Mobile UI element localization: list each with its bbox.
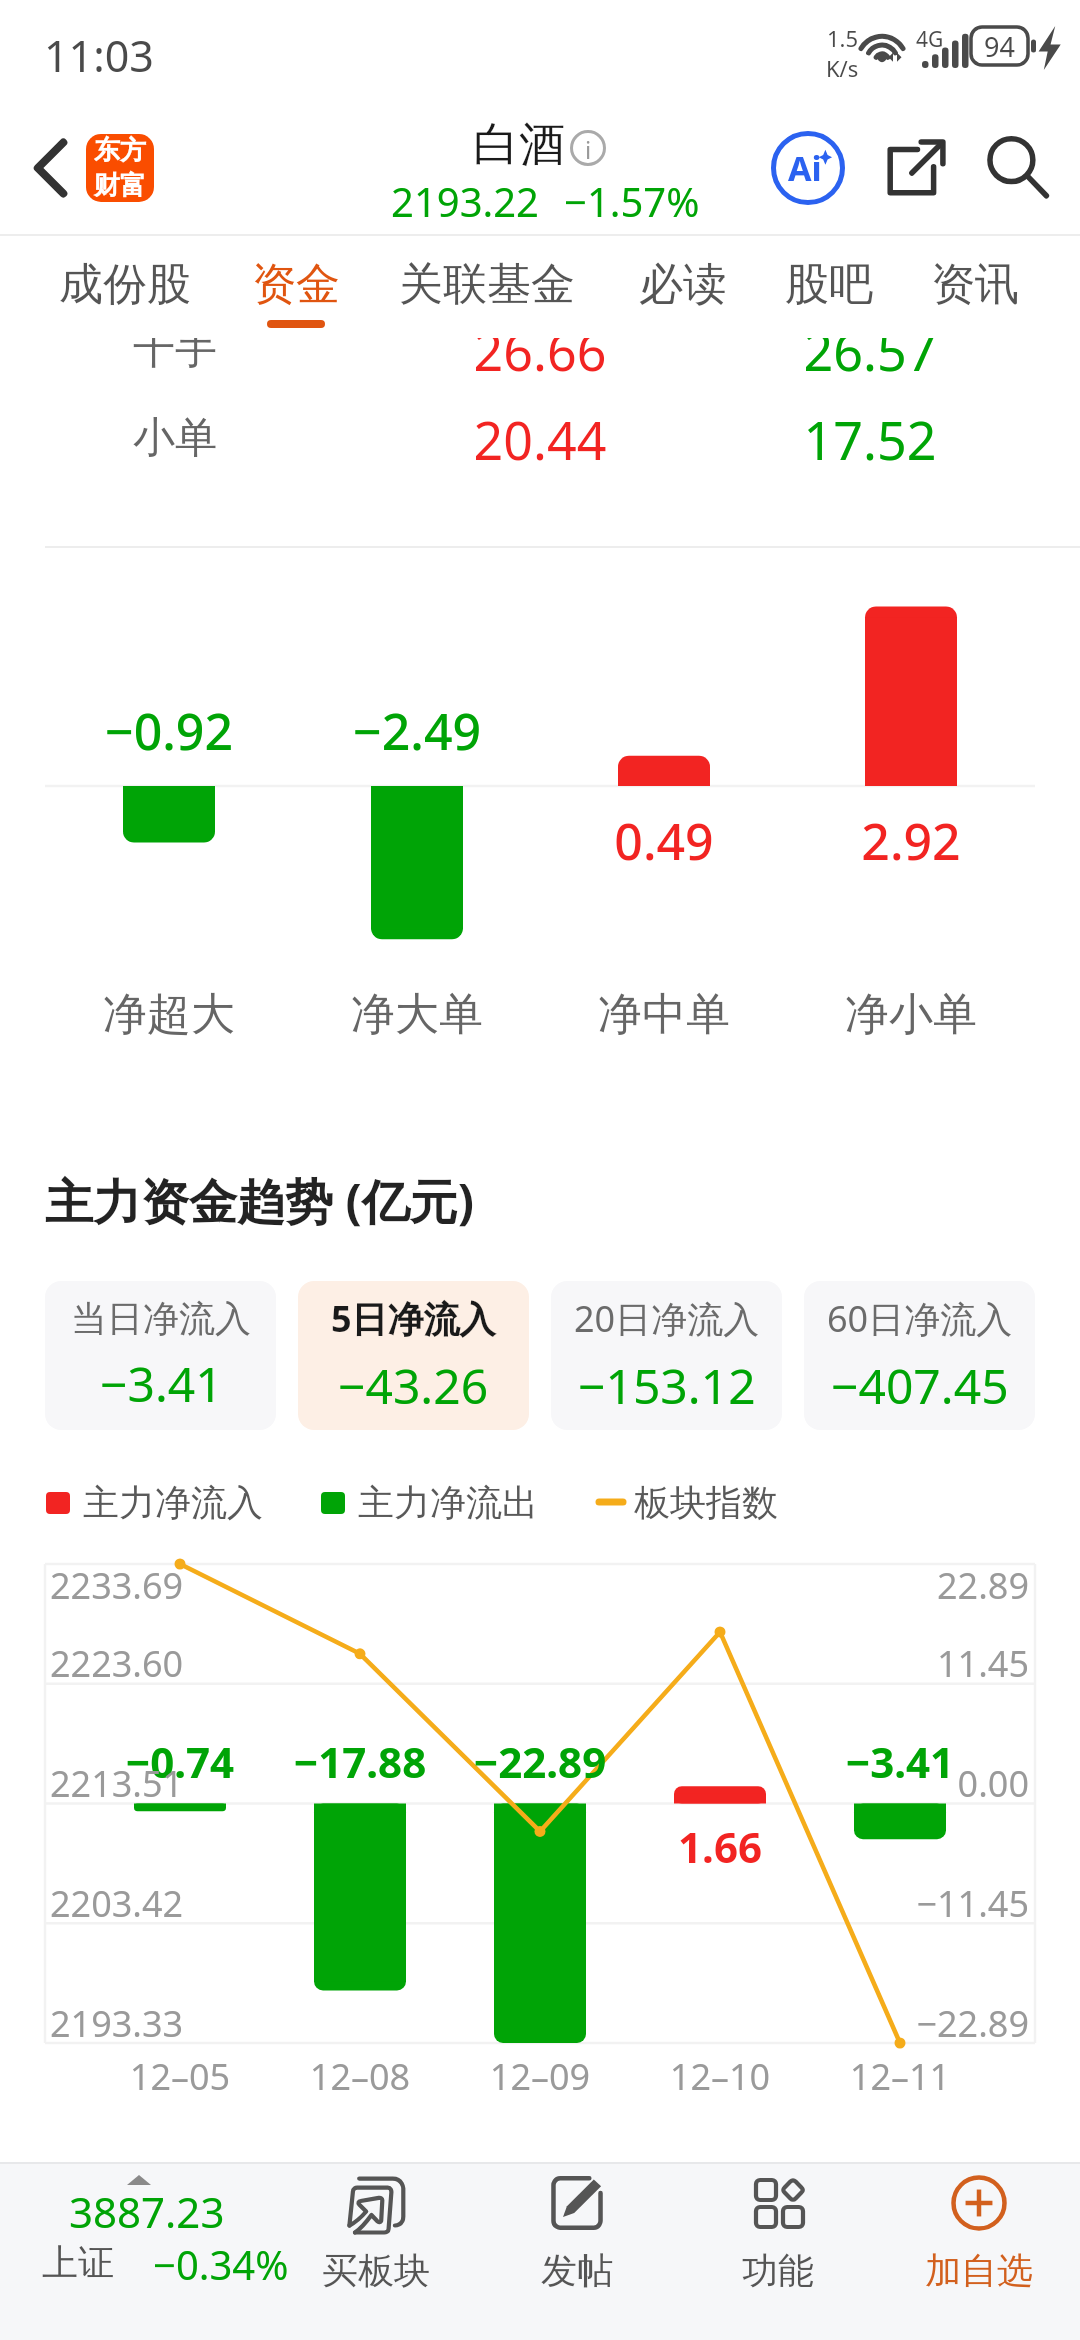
- staticText: −3.41: [100, 1351, 223, 1416]
- staticText: 60日净流入: [827, 1294, 1013, 1343]
- staticText: 白酒: [473, 116, 565, 174]
- staticText: 资金: [252, 257, 340, 312]
- staticText: 千手: [133, 323, 217, 376]
- staticText: 12–11: [700, 2052, 1080, 2101]
- staticText: 3887.23: [69, 2183, 225, 2240]
- staticText: 主力净流入: [83, 1480, 263, 1525]
- staticText: 净小单: [711, 987, 1080, 1042]
- staticText: −17.88: [160, 1733, 560, 1790]
- staticText: 净中单: [464, 987, 864, 1042]
- staticText: 功能: [678, 2248, 878, 2293]
- staticText: 22.89: [629, 1561, 1029, 1610]
- staticText: 17.52: [670, 404, 1070, 475]
- staticText: 2223.60: [50, 1639, 184, 1688]
- staticText: −22.89: [629, 1999, 1029, 2048]
- button[interactable]: 发帖: [477, 2163, 677, 2340]
- button[interactable]: 关联基金: [382, 236, 592, 332]
- staticText: 12–08: [160, 2052, 560, 2101]
- staticText: 0.00: [629, 1759, 1029, 1808]
- staticText: 12–09: [340, 2052, 740, 2101]
- staticText: −1.57%: [564, 174, 700, 228]
- staticText: 1.66: [520, 1818, 920, 1875]
- staticText: −3.41: [700, 1733, 1080, 1790]
- staticText: 2203.42: [50, 1879, 184, 1928]
- staticText: 26.66: [340, 315, 740, 386]
- button[interactable]: 成份股: [45, 236, 205, 332]
- button[interactable]: 加自选: [879, 2163, 1079, 2340]
- staticText: 主力资金趋势 (亿元): [45, 1168, 475, 1234]
- staticText: 2.92: [711, 807, 1080, 875]
- staticText: 0.49: [464, 807, 864, 875]
- staticText: −0.92: [0, 697, 369, 765]
- staticText: 东方: [94, 134, 146, 167]
- staticText: 财富: [94, 169, 146, 202]
- staticText: −43.26: [338, 1353, 489, 1418]
- button[interactable]: 东方财富: [86, 134, 154, 202]
- staticText: 5日净流入: [331, 1294, 496, 1343]
- staticText: 2233.69: [50, 1561, 184, 1610]
- staticText: 当日净流入: [71, 1296, 251, 1341]
- staticText: 1.5: [827, 23, 859, 53]
- button[interactable]: 分享: [867, 120, 963, 216]
- staticText: −407.45: [831, 1353, 1009, 1418]
- staticText: 12–10: [520, 2052, 920, 2101]
- button[interactable]: 返回: [8, 115, 94, 221]
- button[interactable]: 3887.23: [0, 2163, 292, 2340]
- staticText: −0.74: [0, 1733, 380, 1790]
- button[interactable]: 资金: [231, 236, 361, 332]
- staticText: −22.89: [340, 1733, 740, 1790]
- staticText: 4G: [916, 25, 944, 54]
- button[interactable]: AI助手: [760, 120, 856, 216]
- staticText: −11.45: [629, 1879, 1029, 1928]
- staticText: 资讯: [931, 257, 1019, 312]
- staticText: 11.45: [629, 1639, 1029, 1688]
- button[interactable]: 股吧: [764, 236, 894, 332]
- staticText: 2213.51: [50, 1759, 184, 1808]
- button[interactable]: 功能: [678, 2163, 878, 2340]
- button[interactable]: 资讯: [910, 236, 1040, 332]
- button[interactable]: 必读: [618, 236, 748, 332]
- staticText: K/s: [826, 53, 859, 83]
- staticText: 2193.22: [391, 174, 539, 228]
- staticText: 26.57: [670, 315, 1070, 386]
- staticText: −2.49: [217, 697, 617, 765]
- staticText: 11:03: [44, 26, 154, 85]
- staticText: 加自选: [879, 2248, 1079, 2293]
- staticText: 20日净流入: [574, 1294, 760, 1343]
- button[interactable]: 搜索: [970, 120, 1066, 216]
- button[interactable]: 5日净流入: [298, 1281, 529, 1430]
- staticText: 板块指数: [634, 1480, 778, 1525]
- staticText: −153.12: [578, 1353, 756, 1418]
- button[interactable]: 60日净流入: [804, 1281, 1035, 1430]
- staticText: i: [585, 133, 592, 166]
- staticText: 12–05: [0, 2052, 380, 2101]
- button[interactable]: 20日净流入: [551, 1281, 782, 1430]
- staticText: 净超大: [0, 987, 369, 1042]
- staticText: 主力净流出: [358, 1480, 538, 1525]
- staticText: 2193.33: [50, 1999, 184, 2048]
- staticText: 股吧: [785, 257, 873, 312]
- staticText: 必读: [639, 257, 727, 312]
- staticText: 净大单: [217, 987, 617, 1042]
- button[interactable]: 当日净流入: [45, 1281, 276, 1430]
- staticText: 买板块: [276, 2248, 476, 2293]
- staticText: 94: [984, 28, 1015, 65]
- button[interactable]: 买板块: [276, 2163, 476, 2340]
- staticText: 20.44: [340, 404, 740, 475]
- staticText: 关联基金: [399, 257, 575, 312]
- staticText: 小单: [133, 412, 217, 465]
- staticText: 发帖: [477, 2248, 677, 2293]
- staticText: 成份股: [59, 257, 191, 312]
- staticText: −0.34%: [153, 2237, 289, 2291]
- staticText: Ai: [788, 145, 822, 191]
- staticText: 上证: [42, 2240, 114, 2285]
